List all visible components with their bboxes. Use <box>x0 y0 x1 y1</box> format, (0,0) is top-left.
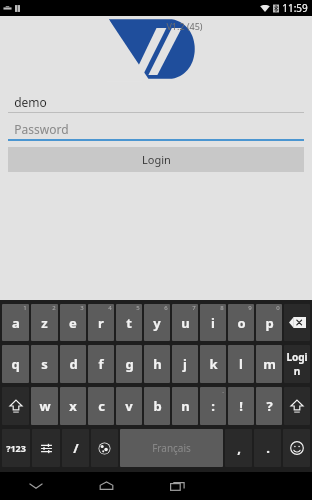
staticText: u <box>181 314 190 332</box>
button[interactable]: Change language <box>91 429 118 467</box>
button[interactable]: q <box>2 345 29 383</box>
button[interactable]: Français <box>120 429 223 467</box>
button[interactable]: o <box>228 304 254 341</box>
button[interactable]: ! <box>228 387 254 425</box>
staticText: ?123 <box>6 442 26 454</box>
staticText: . <box>222 387 224 395</box>
staticText: x <box>69 397 77 415</box>
button[interactable]: h <box>144 345 170 383</box>
button[interactable]: Login <box>284 345 310 383</box>
button[interactable]: n <box>172 387 198 425</box>
button[interactable]: Shift <box>284 387 310 425</box>
staticText: q <box>11 355 20 373</box>
button[interactable]: , <box>225 429 252 467</box>
button[interactable]: m <box>256 345 282 383</box>
button[interactable]: : <box>200 387 226 425</box>
button[interactable]: Login <box>8 147 304 172</box>
button[interactable]: r <box>88 304 114 341</box>
staticText: 0 <box>276 304 280 312</box>
staticText: e <box>69 314 77 332</box>
staticText: / <box>73 439 79 457</box>
staticText: v <box>125 397 133 415</box>
button[interactable]: k <box>200 345 226 383</box>
staticText: n <box>181 397 190 415</box>
button[interactable]: demo <box>8 92 304 113</box>
staticText: 1 <box>23 304 27 312</box>
staticText: b <box>153 397 162 415</box>
staticText: ? <box>266 397 273 415</box>
staticText: p <box>265 314 274 332</box>
button[interactable]: c <box>88 387 114 425</box>
staticText: t <box>126 314 132 332</box>
button[interactable]: Recent apps <box>142 472 213 500</box>
button[interactable]: t <box>116 304 142 341</box>
button[interactable]: y <box>144 304 170 341</box>
button[interactable]: . <box>254 429 281 467</box>
button[interactable]: e <box>60 304 86 341</box>
staticText: . <box>266 439 270 457</box>
staticText: s <box>41 355 48 373</box>
staticText: 4 <box>108 304 112 312</box>
staticText: o <box>237 314 246 332</box>
button[interactable]: Delete <box>284 304 310 341</box>
button[interactable]: w <box>31 387 58 425</box>
button[interactable]: z <box>31 304 58 341</box>
staticText: 2 <box>52 304 56 312</box>
button[interactable]: j <box>172 345 198 383</box>
staticText: Password <box>14 121 69 137</box>
staticText: j <box>183 355 187 373</box>
button[interactable]: Hide keyboard <box>0 472 71 500</box>
staticText: m <box>263 355 276 373</box>
button[interactable]: b <box>144 387 170 425</box>
staticText: a <box>12 314 20 332</box>
staticText: 8 <box>220 304 224 312</box>
button[interactable]: Home <box>71 472 142 500</box>
button[interactable]: g <box>116 345 142 383</box>
button[interactable]: Password <box>8 119 304 141</box>
button[interactable]: s <box>31 345 58 383</box>
button[interactable]: x <box>60 387 86 425</box>
button[interactable]: Emoji <box>283 429 310 467</box>
staticText: h <box>153 355 162 373</box>
staticText: g <box>125 355 134 373</box>
button[interactable]: v <box>116 387 142 425</box>
button[interactable]: ?123 <box>2 429 30 467</box>
staticText: Login <box>142 152 171 167</box>
staticText: f <box>98 355 104 373</box>
staticText: 11:59 <box>282 1 308 15</box>
staticText: demo <box>14 94 47 110</box>
staticText: 7 <box>192 304 196 312</box>
button[interactable]: a <box>2 304 29 341</box>
button[interactable]: / <box>62 429 89 467</box>
staticText: , <box>237 439 241 457</box>
staticText: Français <box>152 441 191 455</box>
staticText: 3 <box>80 304 84 312</box>
button[interactable]: l <box>228 345 254 383</box>
staticText: y <box>153 314 161 332</box>
button[interactable]: p <box>256 304 282 341</box>
button[interactable]: i <box>200 304 226 341</box>
staticText: k <box>209 355 218 373</box>
staticText: ! <box>239 397 243 415</box>
button[interactable]: Keyboard settings <box>32 429 60 467</box>
button[interactable]: f <box>88 345 114 383</box>
button[interactable]: Shift <box>2 387 29 425</box>
staticText: w <box>39 397 51 415</box>
button[interactable]: d <box>60 345 86 383</box>
staticText: r <box>98 314 104 332</box>
staticText: i <box>211 314 215 332</box>
staticText: z <box>41 314 48 332</box>
staticText: 5 <box>136 304 140 312</box>
staticText: : <box>211 397 215 415</box>
staticText: 9 <box>248 304 252 312</box>
staticText: l <box>239 355 243 373</box>
button[interactable]: u <box>172 304 198 341</box>
staticText: 6 <box>164 304 168 312</box>
staticText: c <box>98 397 105 415</box>
staticText: V1.2 (45) <box>166 20 203 32</box>
button[interactable]: ? <box>256 387 282 425</box>
staticText: d <box>69 355 78 373</box>
staticText: Login <box>284 350 310 378</box>
